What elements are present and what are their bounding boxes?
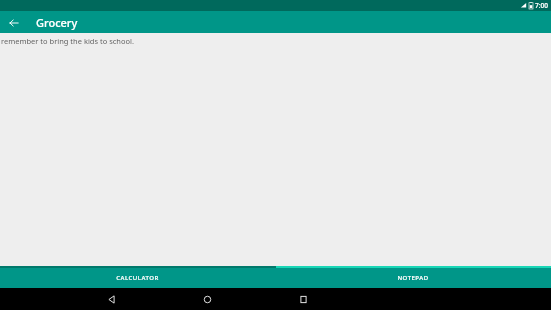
staticText: Grocery	[36, 15, 78, 30]
staticText: remember to bring the kids to school.	[1, 36, 135, 46]
button[interactable]: CALCULATOR	[0, 268, 275, 288]
staticText: NOTEPAD	[397, 274, 429, 282]
button[interactable]: Recent apps	[292, 288, 314, 310]
button[interactable]: Back	[100, 288, 122, 310]
button[interactable]: Back	[5, 14, 22, 31]
staticText: CALCULATOR	[116, 274, 159, 282]
button[interactable]: Home	[196, 288, 218, 310]
button[interactable]: NOTEPAD	[275, 268, 551, 288]
staticText: 7:00	[535, 1, 548, 10]
